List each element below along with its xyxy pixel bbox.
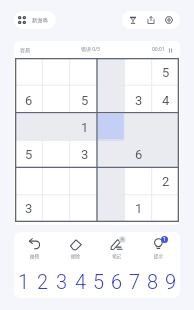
staticText: 5 [81,93,89,108]
button[interactable]: 2 [33,264,52,298]
button[interactable]: 新游戏 [14,11,56,29]
button[interactable]: Statistics [124,11,142,29]
staticText: 5 [25,147,33,162]
button[interactable] [71,195,98,222]
staticText: 撤销 [30,254,40,260]
staticText: 1 [163,237,166,242]
button[interactable] [152,114,179,141]
button[interactable] [43,86,71,114]
button[interactable] [125,58,152,86]
button[interactable] [43,195,71,222]
button[interactable] [98,195,125,222]
button[interactable]: 3 [15,195,43,222]
staticText: 7 [129,270,141,293]
button[interactable]: 5 [152,58,179,86]
staticText: 8 [147,270,159,293]
staticText: 1 [18,270,30,293]
button[interactable] [15,114,43,141]
button[interactable]: 4 [152,86,179,114]
staticText: 笔记 [112,254,122,260]
button[interactable] [15,58,43,86]
button[interactable]: 3 [52,264,71,298]
staticText: 关 [120,237,125,243]
button[interactable]: 6 [15,86,43,114]
staticText: 擦除 [71,254,81,260]
button[interactable] [152,141,179,168]
staticText: 4 [162,93,170,108]
button[interactable]: 6 [125,141,152,168]
staticText: 错误 0/3 [81,46,100,53]
staticText: 4 [75,270,87,293]
staticText: 5 [93,270,105,293]
button[interactable]: 5 [90,264,108,298]
button[interactable]: 2 [152,168,179,195]
button[interactable]: 9 [162,264,180,298]
staticText: 容易 [20,47,30,53]
button[interactable] [152,195,179,222]
button[interactable]: 6 [108,264,126,298]
staticText: 3 [25,201,33,216]
button[interactable] [98,86,125,114]
button[interactable]: 4 [71,264,90,298]
button[interactable] [71,58,98,86]
button[interactable]: 1 [125,195,152,222]
button[interactable]: 1 [71,114,98,141]
staticText: 2 [162,174,170,189]
staticText: 1 [81,120,89,135]
button[interactable] [98,141,125,168]
button[interactable]: 1 [145,238,173,260]
staticText: 6 [135,147,143,162]
button[interactable]: 1 [14,264,33,298]
button[interactable]: 3 [125,86,152,114]
button[interactable]: 关 [103,238,131,260]
button[interactable] [98,58,125,86]
staticText: 3 [135,93,143,108]
button[interactable]: Settings [160,11,178,29]
button[interactable] [43,141,71,168]
button[interactable] [43,168,71,195]
staticText: 新游戏 [32,17,48,24]
button[interactable] [43,58,71,86]
button[interactable]: 擦除 [62,238,90,260]
button[interactable]: 8 [144,264,162,298]
staticText: 1 [135,201,143,216]
button[interactable]: 7 [126,264,144,298]
button[interactable] [98,114,125,141]
staticText: 3 [56,270,68,293]
staticText: 6 [25,93,33,108]
button[interactable]: Share [142,11,160,29]
button[interactable] [125,168,152,195]
staticText: 5 [162,65,170,80]
staticText: 00:01 [152,46,165,53]
staticText: 3 [81,147,89,162]
button[interactable]: Pause [167,47,173,53]
button[interactable] [71,168,98,195]
button[interactable]: 5 [71,86,98,114]
staticText: 6 [111,270,123,293]
button[interactable]: 3 [71,141,98,168]
button[interactable]: 5 [15,141,43,168]
button[interactable]: 撤销 [21,238,49,260]
button[interactable] [15,168,43,195]
staticText: 2 [37,270,49,293]
staticText: 提示 [154,254,164,260]
staticText: 9 [165,270,177,293]
